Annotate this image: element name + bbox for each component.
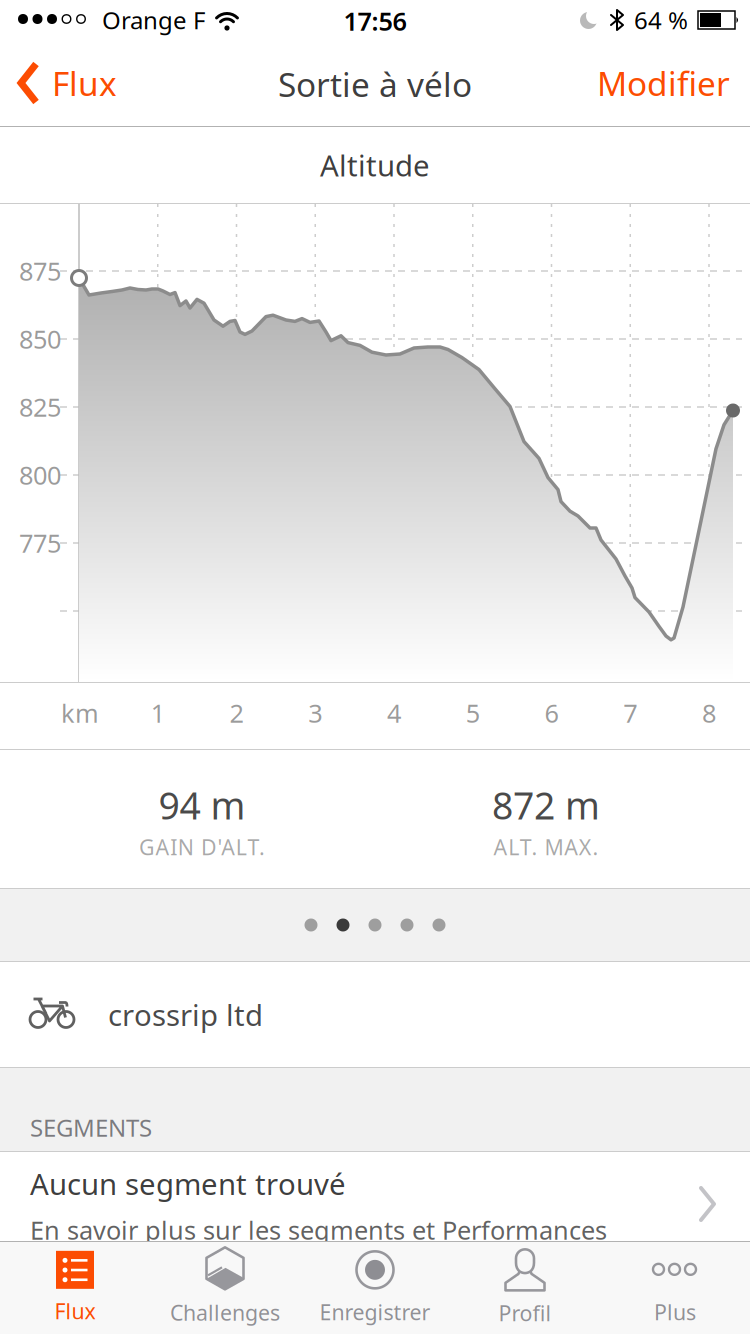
staticText: 850: [19, 322, 61, 356]
staticText: km: [61, 696, 99, 730]
staticText: 2: [229, 696, 243, 730]
staticText: SEGMENTS: [30, 1112, 152, 1143]
staticText: En savoir plus sur les segments et Perfo…: [30, 1213, 607, 1247]
staticText: ALT. MAX.: [494, 833, 598, 861]
staticText: 1: [151, 696, 165, 730]
staticText: 6: [544, 696, 558, 730]
staticText: Aucun segment trouvé: [30, 1164, 346, 1203]
staticText: 775: [19, 526, 61, 560]
staticText: Flux: [52, 61, 117, 105]
staticText: 800: [19, 458, 61, 492]
staticText: Challenges: [170, 1298, 280, 1327]
button[interactable]: Aucun segment trouvé: [0, 1146, 750, 1247]
button[interactable]: Flux: [0, 1242, 150, 1334]
staticText: Profil: [498, 1299, 551, 1327]
staticText: 825: [19, 390, 61, 424]
staticText: Orange F: [102, 4, 205, 36]
button[interactable]: crossrip ltd: [0, 995, 750, 1034]
staticText: 5: [466, 696, 480, 730]
staticText: 7: [623, 696, 637, 730]
button[interactable]: Enregistrer: [300, 1242, 450, 1334]
staticText: 875: [19, 254, 61, 288]
button[interactable]: Flux: [0, 61, 117, 105]
staticText: GAIN D'ALT.: [139, 833, 265, 861]
button[interactable]: Plus: [600, 1242, 750, 1334]
staticText: Flux: [54, 1297, 95, 1325]
staticText: Modifier: [597, 61, 730, 105]
button[interactable]: Modifier: [597, 61, 750, 105]
staticText: 64 %: [634, 4, 688, 36]
button[interactable]: Challenges: [150, 1242, 300, 1334]
staticText: 8: [702, 696, 716, 730]
staticText: 3: [308, 696, 322, 730]
staticText: Sortie à vélo: [278, 62, 472, 106]
staticText: 94 m: [158, 780, 245, 830]
staticText: Altitude: [320, 145, 430, 184]
staticText: Plus: [654, 1298, 696, 1326]
button[interactable]: Profil: [450, 1242, 600, 1334]
staticText: Enregistrer: [319, 1298, 430, 1326]
staticText: crossrip ltd: [108, 995, 263, 1034]
staticText: 4: [387, 696, 401, 730]
staticText: 17:56: [343, 4, 406, 38]
staticText: 872 m: [492, 780, 600, 830]
